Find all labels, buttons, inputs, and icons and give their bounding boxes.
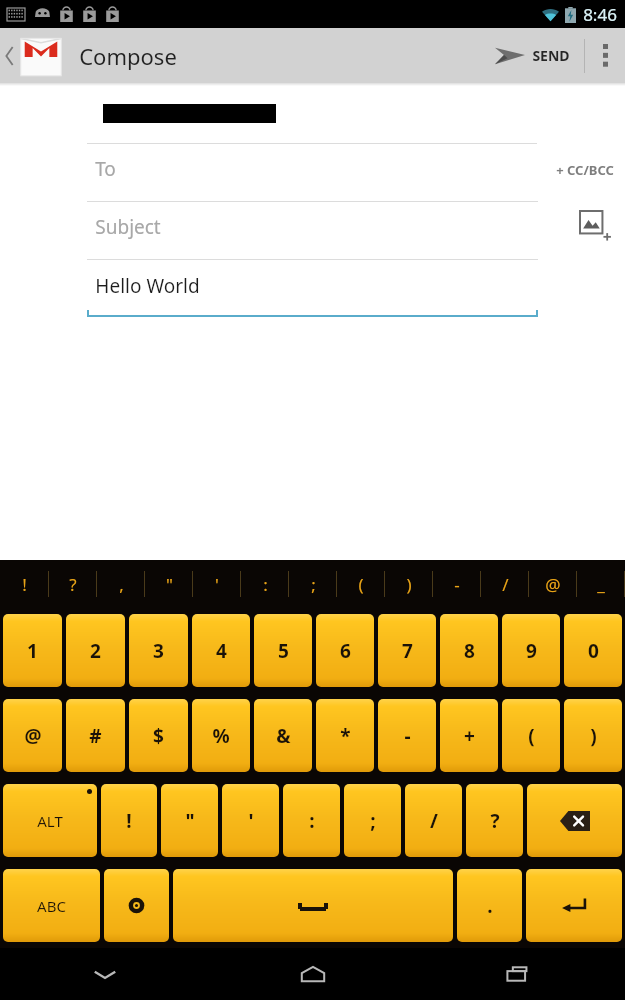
button[interactable]: 1 (3, 614, 62, 687)
button[interactable]: + CC/BCC (550, 155, 620, 185)
button[interactable]: To (0, 144, 625, 202)
staticText: 9 (526, 638, 537, 664)
staticText: SEND (532, 46, 570, 65)
staticText: / (430, 808, 438, 834)
button[interactable]: Attach image (574, 205, 620, 251)
button[interactable]: 5 (254, 614, 312, 687)
button[interactable]: Keyboard settings (104, 869, 169, 942)
button[interactable]: @ (529, 560, 577, 608)
staticText: ? (69, 573, 77, 596)
staticText: * (340, 723, 351, 749)
staticText: 8:46 (583, 3, 617, 26)
button[interactable]: $ (129, 699, 188, 772)
button[interactable]: ) (385, 560, 433, 608)
button[interactable]: 9 (502, 614, 560, 687)
button[interactable]: * (316, 699, 374, 772)
staticText: ! (126, 808, 132, 834)
button[interactable]: ; (289, 560, 337, 608)
button[interactable]: ? (466, 784, 523, 857)
button[interactable]: % (192, 699, 250, 772)
button[interactable]: : (283, 784, 340, 857)
button[interactable]: . (457, 869, 522, 942)
button[interactable]: SEND (481, 28, 584, 83)
staticText: - (404, 723, 411, 749)
staticText: To (95, 156, 116, 182)
button[interactable]: ! (0, 560, 49, 608)
staticText: @ (24, 723, 42, 749)
button[interactable]: / (405, 784, 462, 857)
button[interactable]: & (254, 699, 312, 772)
button[interactable]: ? (49, 560, 97, 608)
staticText: 3 (153, 638, 164, 664)
staticText: Compose (79, 41, 177, 71)
button[interactable]: 2 (66, 614, 125, 687)
staticText: _ (597, 573, 605, 596)
staticText: 6 (340, 638, 351, 664)
staticText: $ (153, 723, 164, 749)
button[interactable]: Space (173, 869, 453, 942)
button[interactable]: Hide keyboard (0, 948, 209, 1000)
button[interactable]: - (433, 560, 481, 608)
staticText: - (454, 573, 460, 596)
staticText: ' (215, 573, 219, 596)
button[interactable]: 7 (378, 614, 436, 687)
button[interactable]: ( (337, 560, 385, 608)
staticText: ) (590, 723, 597, 749)
button[interactable]: : (241, 560, 289, 608)
button[interactable]: 8 (440, 614, 498, 687)
button[interactable]: ' (193, 560, 241, 608)
staticText: + CC/BCC (556, 161, 614, 179)
button[interactable]: " (145, 560, 193, 608)
staticText: Subject (95, 214, 161, 240)
button[interactable]: _ (577, 560, 625, 608)
staticText: Hello World (95, 273, 200, 299)
button[interactable]: 3 (129, 614, 188, 687)
staticText: & (276, 723, 291, 749)
staticText: @ (545, 573, 561, 596)
staticText: , (119, 573, 124, 596)
button[interactable]: , (97, 560, 145, 608)
button[interactable]: Subject (0, 202, 625, 260)
button[interactable]: @ (3, 699, 62, 772)
staticText: 2 (90, 638, 101, 664)
button[interactable]: ALT (3, 784, 97, 857)
button[interactable]: " (161, 784, 218, 857)
staticText: 0 (588, 638, 599, 664)
staticText: 4 (216, 638, 227, 664)
staticText: # (89, 723, 102, 749)
button[interactable]: ! (101, 784, 157, 857)
staticText: ALT (37, 811, 63, 831)
button[interactable]: 0 (564, 614, 622, 687)
button[interactable]: ' (222, 784, 279, 857)
staticText: : (309, 808, 315, 834)
staticText: / (502, 573, 509, 596)
button[interactable]: Home (209, 948, 417, 1000)
button[interactable]: ) (564, 699, 622, 772)
button[interactable]: Backspace (527, 784, 622, 857)
button[interactable]: ; (344, 784, 401, 857)
staticText: 7 (402, 638, 413, 664)
staticText: ! (22, 573, 27, 596)
staticText: ; (311, 573, 316, 596)
button[interactable]: / (481, 560, 529, 608)
staticText: ; (370, 808, 376, 834)
button[interactable]: More options (585, 28, 625, 83)
button[interactable]: Navigate up (0, 28, 65, 83)
button[interactable]: # (66, 699, 125, 772)
button[interactable]: ABC (3, 869, 100, 942)
staticText: ( (358, 573, 364, 596)
staticText: : (263, 573, 268, 596)
button[interactable]: Recent apps (417, 948, 625, 1000)
button[interactable]: 4 (192, 614, 250, 687)
staticText: % (212, 723, 230, 749)
button[interactable]: ( (502, 699, 560, 772)
button[interactable]: - (378, 699, 436, 772)
staticText: 1 (27, 638, 38, 664)
button[interactable]: + (440, 699, 498, 772)
staticText: ABC (37, 896, 66, 916)
staticText: 5 (278, 638, 289, 664)
staticText: " (185, 808, 195, 834)
staticText: . (487, 893, 493, 919)
button[interactable]: 6 (316, 614, 374, 687)
button[interactable]: Enter (526, 869, 622, 942)
